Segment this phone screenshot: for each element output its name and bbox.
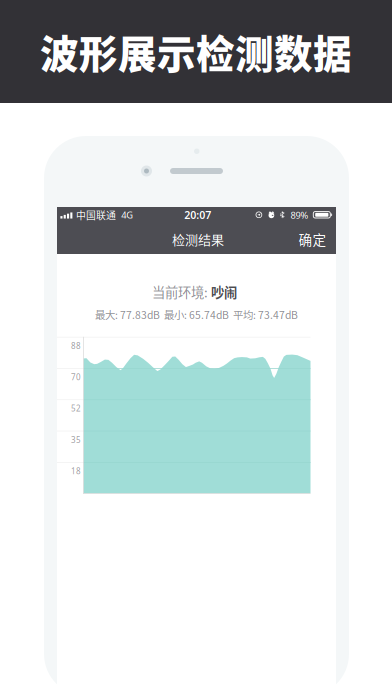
staticText: 20:07 [184,208,211,222]
staticText: 当前环境: [152,282,211,301]
staticText: 检测结果 [172,229,224,248]
staticText: 52 [71,403,81,414]
staticText: 波形展示检测数据 [40,24,352,79]
staticText: 确定 [298,229,326,249]
staticText: 18 [71,466,81,476]
staticText: 中国联通 [76,208,116,222]
staticText: 35 [71,434,81,445]
staticText: 88 [71,341,81,351]
staticText: 吵闹 [211,282,237,301]
staticText: 89% [291,209,309,221]
staticText: 最大: 77.83dB 最小: 65.74dB 平均: 73.47dB [95,307,298,322]
staticText: 70 [71,372,81,382]
button[interactable]: 确定 [286,227,338,254]
staticText: 4G [121,209,133,221]
